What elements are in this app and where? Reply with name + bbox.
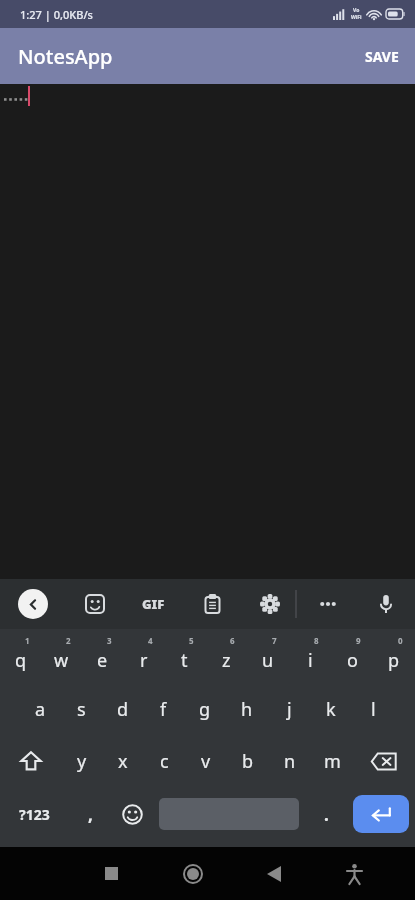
staticText: Vo: [353, 7, 360, 14]
button[interactable]: m: [311, 735, 353, 787]
staticText: d: [117, 697, 129, 722]
button[interactable]: GIF: [136, 589, 171, 619]
staticText: b: [242, 749, 254, 774]
button[interactable]: More: [313, 595, 343, 613]
button[interactable]: Stickers: [79, 588, 111, 620]
button[interactable]: 2: [41, 631, 82, 683]
button[interactable]: Back: [233, 847, 314, 900]
staticText: v: [201, 749, 211, 774]
button[interactable]: Settings: [254, 588, 286, 620]
button[interactable]: 7: [247, 631, 289, 683]
staticText: i: [308, 648, 313, 673]
staticText: e: [97, 648, 108, 673]
button[interactable]: v: [185, 735, 227, 787]
button[interactable]: n: [269, 735, 311, 787]
button[interactable]: 6: [205, 631, 247, 683]
staticText: 1: [25, 635, 30, 646]
staticText: o: [347, 648, 358, 673]
staticText: x: [118, 749, 128, 774]
staticText: 0: [398, 635, 403, 646]
staticText: r: [140, 648, 148, 673]
button[interactable]: f: [143, 683, 184, 735]
staticText: f: [160, 697, 167, 722]
staticText: NotesApp: [18, 43, 113, 70]
button[interactable]: ?123: [0, 787, 69, 841]
staticText: 8: [314, 635, 319, 646]
button[interactable]: Recents: [70, 847, 152, 900]
button[interactable]: g: [184, 683, 226, 735]
staticText: k: [326, 697, 336, 722]
staticText: t: [181, 648, 188, 673]
button[interactable]: b: [227, 735, 269, 787]
staticText: a: [35, 697, 46, 722]
staticText: ?123: [19, 805, 50, 824]
button[interactable]: y: [61, 735, 102, 787]
button[interactable]: 1: [0, 631, 41, 683]
button[interactable]: l: [352, 683, 394, 735]
staticText: j: [287, 697, 292, 722]
button[interactable]: 5: [164, 631, 205, 683]
button[interactable]: 9: [331, 631, 373, 683]
staticText: 7: [272, 635, 277, 646]
staticText: s: [77, 697, 86, 722]
button[interactable]: h: [226, 683, 268, 735]
button[interactable]: x: [102, 735, 143, 787]
button[interactable]: Emoji: [111, 787, 153, 841]
staticText: 9: [356, 635, 361, 646]
button[interactable]: Backspace: [353, 735, 415, 787]
staticText: p: [388, 648, 400, 673]
button[interactable]: 4: [123, 631, 164, 683]
staticText: .: [324, 803, 329, 826]
staticText: 6: [230, 635, 235, 646]
staticText: SAVE: [365, 47, 399, 66]
button[interactable]: j: [268, 683, 310, 735]
staticText: c: [160, 749, 169, 774]
staticText: l: [371, 697, 376, 722]
button[interactable]: a: [20, 683, 61, 735]
staticText: n: [284, 749, 296, 774]
button[interactable]: Accessibility: [314, 847, 395, 900]
staticText: z: [222, 648, 231, 673]
staticText: w: [54, 648, 69, 673]
button[interactable]: Enter: [353, 795, 409, 833]
button[interactable]: Voice input: [373, 588, 399, 620]
button[interactable]: Back: [18, 589, 48, 619]
staticText: u: [262, 648, 274, 673]
button[interactable]: d: [102, 683, 143, 735]
button[interactable]: .: [305, 787, 347, 841]
staticText: GIF: [142, 595, 165, 613]
staticText: g: [199, 697, 211, 722]
staticText: y: [77, 749, 87, 774]
button[interactable]: 3: [82, 631, 123, 683]
staticText: h: [241, 697, 253, 722]
button[interactable]: Home: [152, 847, 233, 900]
button[interactable]: Shift: [0, 735, 61, 787]
staticText: WiFi: [351, 14, 362, 21]
staticText: 2: [66, 635, 71, 646]
button[interactable]: c: [143, 735, 185, 787]
staticText: ,: [88, 803, 93, 826]
staticText: 5: [189, 635, 194, 646]
button[interactable]: SAVE: [349, 33, 415, 80]
button[interactable]: ,: [69, 787, 111, 841]
staticText: m: [324, 749, 341, 774]
button[interactable]: 8: [289, 631, 331, 683]
staticText: 4: [148, 635, 153, 646]
button[interactable]: k: [310, 683, 352, 735]
staticText: q: [15, 648, 27, 673]
button[interactable]: Clipboard: [198, 588, 227, 620]
button[interactable]: s: [61, 683, 102, 735]
button[interactable]: 0: [373, 631, 415, 683]
staticText: 1:27 | 0,0KB/s: [20, 7, 93, 22]
staticText: 3: [107, 635, 112, 646]
